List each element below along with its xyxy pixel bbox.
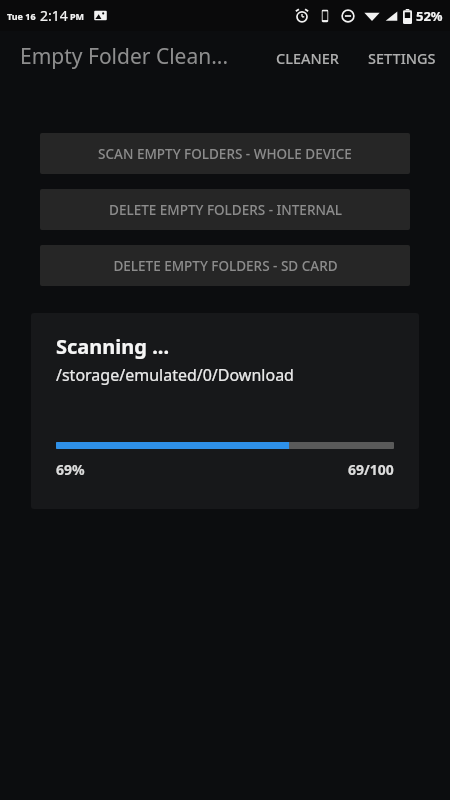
staticText: CLEANER bbox=[276, 48, 340, 68]
staticText: Scanning ... bbox=[56, 333, 169, 360]
staticText: DELETE EMPTY FOLDERS - INTERNAL bbox=[109, 201, 342, 219]
staticText: SCAN EMPTY FOLDERS - WHOLE DEVICE bbox=[98, 145, 352, 163]
staticText: PM bbox=[70, 10, 85, 22]
staticText: DELETE EMPTY FOLDERS - SD CARD bbox=[113, 257, 338, 275]
button[interactable]: Scanning ... bbox=[31, 313, 419, 509]
button[interactable]: SETTINGS bbox=[354, 36, 450, 80]
button[interactable]: CLEANER bbox=[262, 36, 354, 80]
button[interactable]: DELETE EMPTY FOLDERS - INTERNAL bbox=[40, 189, 410, 230]
staticText: SETTINGS bbox=[368, 48, 436, 68]
staticText: Empty Folder Clean... bbox=[20, 42, 229, 71]
staticText: Tue 16 bbox=[7, 10, 36, 22]
button[interactable]: DELETE EMPTY FOLDERS - SD CARD bbox=[40, 245, 410, 286]
staticText: 69% bbox=[56, 460, 85, 479]
staticText: 2:14 bbox=[40, 6, 68, 25]
button[interactable]: SCAN EMPTY FOLDERS - WHOLE DEVICE bbox=[40, 133, 410, 174]
staticText: 52% bbox=[416, 7, 443, 25]
staticText: 69/100 bbox=[348, 460, 394, 479]
staticText: /storage/emulated/0/Download bbox=[56, 364, 294, 386]
